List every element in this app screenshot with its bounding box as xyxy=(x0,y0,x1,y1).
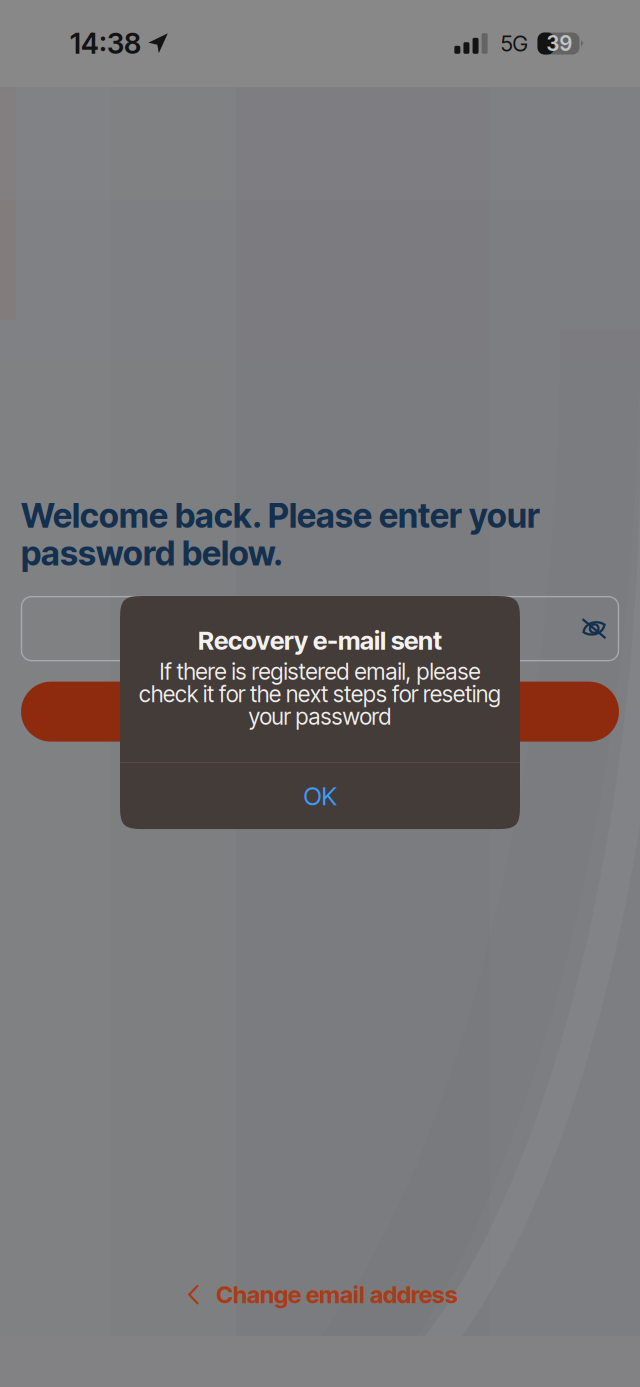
staticText: OK xyxy=(303,781,336,811)
staticText: 14:38 xyxy=(70,27,141,60)
staticText: your password xyxy=(248,703,391,730)
staticText: Welcome back. Please enter your xyxy=(21,495,540,536)
staticText: 39 xyxy=(546,31,572,56)
staticText: 5G xyxy=(500,30,527,57)
button[interactable] xyxy=(21,682,619,742)
button[interactable]: Change email address xyxy=(164,1270,476,1319)
staticText: Change email address xyxy=(216,1280,458,1309)
staticText: If there is registered email, please xyxy=(159,658,480,685)
staticText: check it for the next steps for reseting xyxy=(139,680,501,708)
button[interactable]: OK xyxy=(120,763,520,829)
staticText: Recovery e-mail sent xyxy=(198,625,442,656)
staticText: password below. xyxy=(21,533,283,574)
button[interactable]: Show password xyxy=(581,610,606,647)
